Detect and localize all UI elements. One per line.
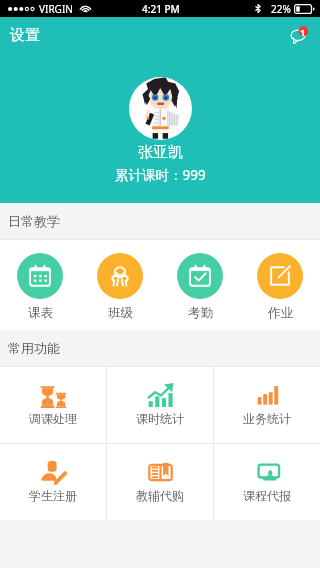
staticText: 调课处理 (29, 411, 77, 426)
staticText: VIRGIN (39, 2, 73, 16)
button[interactable]: 班级 (80, 240, 160, 330)
staticText: 课时统计 (136, 411, 184, 426)
button[interactable]: 教辅代购 (107, 444, 213, 520)
staticText: 22% (271, 2, 291, 16)
staticText: 常用功能 (8, 340, 60, 356)
button[interactable]: 课表 (0, 240, 80, 330)
button[interactable]: 课程代报 (214, 444, 320, 520)
staticText: 4:21 PM (142, 2, 180, 16)
staticText: 班级 (108, 305, 133, 321)
button[interactable]: 考勤 (160, 240, 240, 330)
staticText: 累计课时：999 (115, 166, 206, 184)
button[interactable]: 调课处理 (0, 367, 106, 443)
staticText: 课表 (28, 305, 53, 321)
button[interactable]: 课时统计 (107, 367, 213, 443)
staticText: 考勤 (188, 305, 213, 321)
staticText: 张亚凯 (138, 143, 183, 162)
staticText: 教辅代购 (136, 488, 184, 503)
button[interactable]: 学生注册 (0, 444, 106, 520)
staticText: 业务统计 (243, 411, 291, 426)
button[interactable]: Messages (289, 25, 310, 46)
staticText: 设置 (10, 26, 40, 45)
staticText: 作业 (268, 305, 293, 321)
staticText: 日常教学 (8, 213, 60, 229)
staticText: 学生注册 (29, 488, 77, 503)
staticText: 课程代报 (243, 488, 291, 503)
button[interactable]: 作业 (240, 240, 320, 330)
button[interactable]: 业务统计 (214, 367, 320, 443)
staticText: 1 (300, 26, 306, 36)
